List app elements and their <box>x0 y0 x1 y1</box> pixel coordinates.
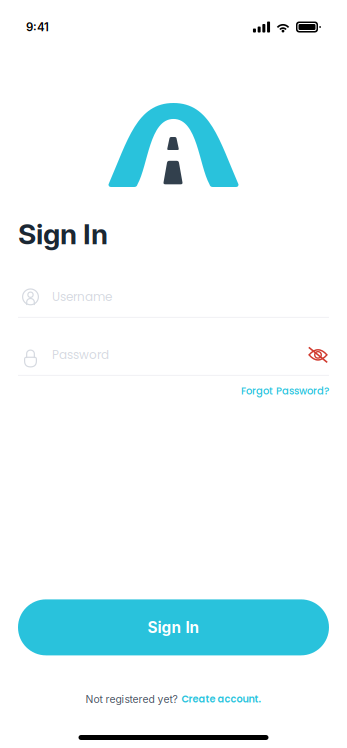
staticText: 9:41 <box>26 20 49 34</box>
staticText: Forgot Password? <box>241 384 329 398</box>
button[interactable]: Show password <box>307 346 329 363</box>
staticText: Sign In <box>18 217 108 251</box>
staticText: Password <box>52 346 109 363</box>
button[interactable]: Create account. <box>181 692 261 706</box>
staticText: Username <box>52 288 112 305</box>
staticText: Create account. <box>181 692 261 706</box>
button[interactable]: Forgot Password? <box>241 384 329 398</box>
staticText: Not registered yet? <box>85 693 177 705</box>
button[interactable]: Sign In <box>18 599 329 655</box>
staticText: Sign In <box>147 618 199 637</box>
